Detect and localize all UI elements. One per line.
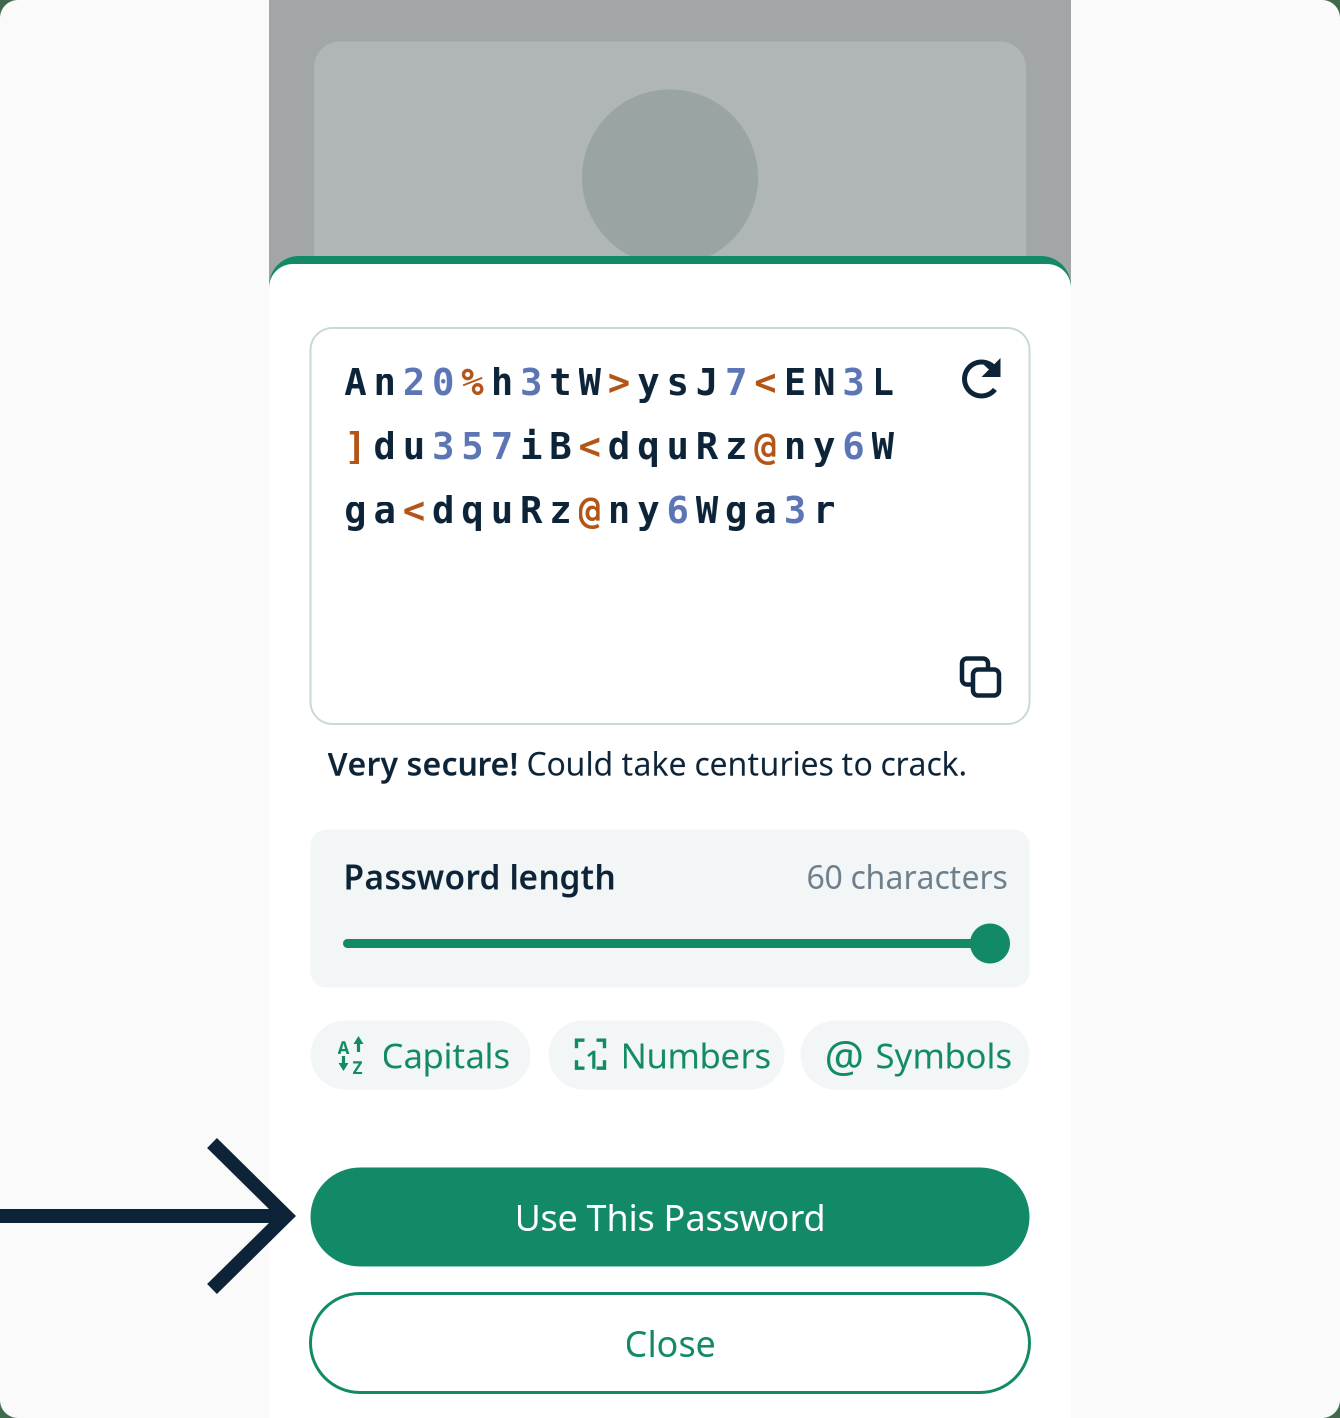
- staticText: u: [666, 425, 688, 467]
- staticText: q: [637, 425, 659, 467]
- staticText: %: [461, 361, 483, 403]
- staticText: y: [637, 489, 659, 531]
- staticText: a: [754, 489, 776, 531]
- staticText: A: [337, 1036, 349, 1059]
- staticText: <: [754, 361, 776, 403]
- button[interactable]: Close: [310, 1293, 1029, 1392]
- staticText: 7: [491, 425, 513, 467]
- staticText: u: [403, 425, 425, 467]
- staticText: Numbers: [620, 1032, 771, 1078]
- staticText: >: [608, 361, 630, 403]
- staticText: n: [608, 489, 630, 531]
- staticText: n: [373, 361, 395, 403]
- staticText: Use This Password: [514, 1193, 825, 1241]
- staticText: d: [373, 425, 395, 467]
- staticText: @: [579, 489, 601, 531]
- staticText: B: [549, 425, 571, 467]
- button[interactable]: Copy password: [956, 653, 993, 690]
- staticText: i: [520, 425, 542, 467]
- staticText: a: [373, 489, 395, 531]
- staticText: n: [784, 425, 806, 467]
- button[interactable]: A: [310, 1020, 530, 1089]
- staticText: u: [491, 489, 513, 531]
- staticText: Z: [352, 1056, 362, 1079]
- staticText: @: [824, 1026, 864, 1084]
- staticText: r: [813, 489, 835, 531]
- staticText: Password length: [343, 854, 615, 899]
- staticText: t: [549, 361, 571, 403]
- staticText: 3: [432, 425, 454, 467]
- staticText: d: [608, 425, 630, 467]
- staticText: h: [491, 361, 513, 403]
- staticText: Very secure!: [327, 742, 518, 784]
- staticText: <: [403, 489, 425, 531]
- button[interactable]: Use This Password: [310, 1167, 1029, 1266]
- staticText: 3: [520, 361, 542, 403]
- staticText: N: [813, 361, 835, 403]
- button[interactable]: Regenerate password: [962, 352, 1010, 402]
- staticText: W: [579, 361, 601, 403]
- staticText: 6: [842, 425, 864, 467]
- staticText: L: [872, 361, 894, 403]
- staticText: g: [725, 489, 747, 531]
- staticText: <: [579, 425, 601, 467]
- staticText: R: [520, 489, 542, 531]
- staticText: R: [696, 425, 718, 467]
- staticText: 5: [461, 425, 483, 467]
- staticText: y: [813, 425, 835, 467]
- staticText: Capitals: [381, 1032, 510, 1078]
- staticText: 3: [842, 361, 864, 403]
- staticText: 1: [585, 1042, 599, 1076]
- staticText: g: [344, 489, 366, 531]
- staticText: z: [549, 489, 571, 531]
- button[interactable]: 1: [548, 1020, 784, 1089]
- staticText: Could take centuries to crack.: [518, 742, 967, 784]
- staticText: @: [754, 425, 776, 467]
- staticText: J: [696, 361, 718, 403]
- staticText: W: [872, 425, 894, 467]
- staticText: 7: [725, 361, 747, 403]
- staticText: Close: [624, 1319, 715, 1367]
- staticText: s: [666, 361, 688, 403]
- staticText: q: [461, 489, 483, 531]
- staticText: d: [432, 489, 454, 531]
- staticText: 6: [666, 489, 688, 531]
- staticText: 0: [432, 361, 454, 403]
- staticText: Symbols: [875, 1032, 1012, 1078]
- staticText: 60 characters: [806, 855, 1007, 898]
- staticText: W: [696, 489, 718, 531]
- staticText: E: [784, 361, 806, 403]
- staticText: 2: [403, 361, 425, 403]
- staticText: 3: [784, 489, 806, 531]
- button[interactable]: @: [800, 1020, 1029, 1089]
- staticText: ]: [344, 425, 366, 467]
- staticText: y: [637, 361, 659, 403]
- staticText: z: [725, 425, 747, 467]
- staticText: A: [344, 361, 366, 403]
